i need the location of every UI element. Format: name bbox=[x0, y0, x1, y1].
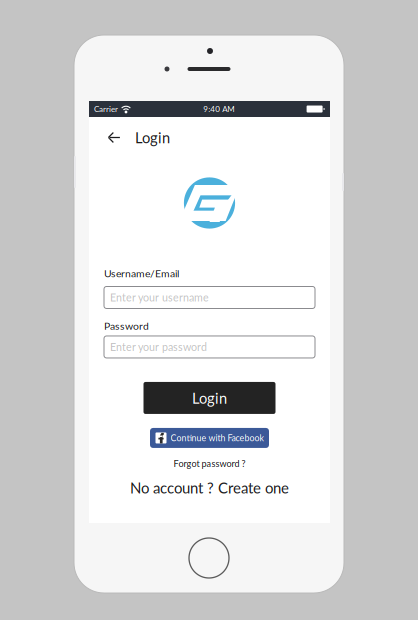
staticText: Username/Email bbox=[104, 267, 179, 279]
button[interactable]: Forgot password ? bbox=[173, 458, 245, 469]
staticText: Enter your username bbox=[110, 291, 209, 304]
staticText: No account ? Create one bbox=[130, 479, 289, 497]
staticText: Continue with Facebook bbox=[170, 433, 263, 443]
staticText: Login bbox=[135, 129, 170, 146]
staticText: Login bbox=[192, 389, 227, 407]
staticText: Carrier bbox=[94, 104, 118, 114]
button[interactable]: Continue with Facebook bbox=[150, 428, 269, 448]
button[interactable]: No account ? Create one bbox=[130, 479, 289, 497]
staticText: Forgot password ? bbox=[173, 458, 245, 469]
button[interactable]: Back bbox=[102, 122, 126, 152]
staticText: Password bbox=[104, 319, 149, 332]
button[interactable]: Login bbox=[143, 382, 275, 414]
staticText: Enter your password bbox=[110, 341, 207, 353]
staticText: 9:40 AM bbox=[203, 104, 234, 114]
